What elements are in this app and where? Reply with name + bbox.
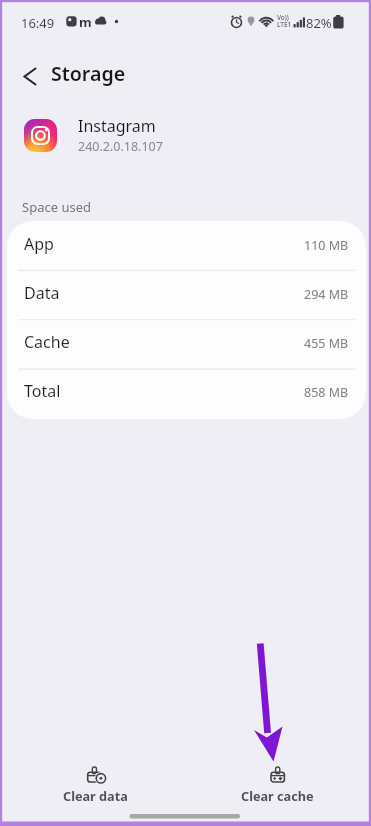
- button[interactable]: Data: [7, 270, 366, 319]
- button[interactable]: Clear cache: [227, 765, 327, 804]
- staticText: Storage: [51, 60, 126, 87]
- staticText: Clear cache: [241, 787, 314, 804]
- button[interactable]: App: [7, 221, 366, 270]
- staticText: 294 MB: [304, 286, 349, 303]
- staticText: Vo)): [277, 13, 289, 22]
- staticText: Clear data: [63, 787, 128, 804]
- staticText: 455 MB: [304, 335, 349, 352]
- button[interactable]: [14, 60, 50, 92]
- staticText: 110 MB: [304, 237, 349, 254]
- staticText: 240.2.0.18.107: [78, 138, 163, 155]
- staticText: m: [79, 13, 92, 31]
- button[interactable]: Cache: [7, 319, 366, 368]
- button[interactable]: Total: [7, 368, 366, 417]
- staticText: Data: [24, 282, 60, 304]
- staticText: App: [24, 233, 54, 255]
- staticText: 858 MB: [304, 384, 349, 401]
- staticText: Total: [24, 380, 61, 402]
- staticText: LTE1: [277, 20, 292, 29]
- button[interactable]: Clear data: [45, 765, 145, 804]
- staticText: Space used: [22, 198, 91, 216]
- staticText: 82%: [306, 14, 332, 32]
- staticText: Instagram: [78, 115, 156, 137]
- staticText: 16:49: [21, 14, 55, 32]
- staticText: Cache: [24, 331, 70, 353]
